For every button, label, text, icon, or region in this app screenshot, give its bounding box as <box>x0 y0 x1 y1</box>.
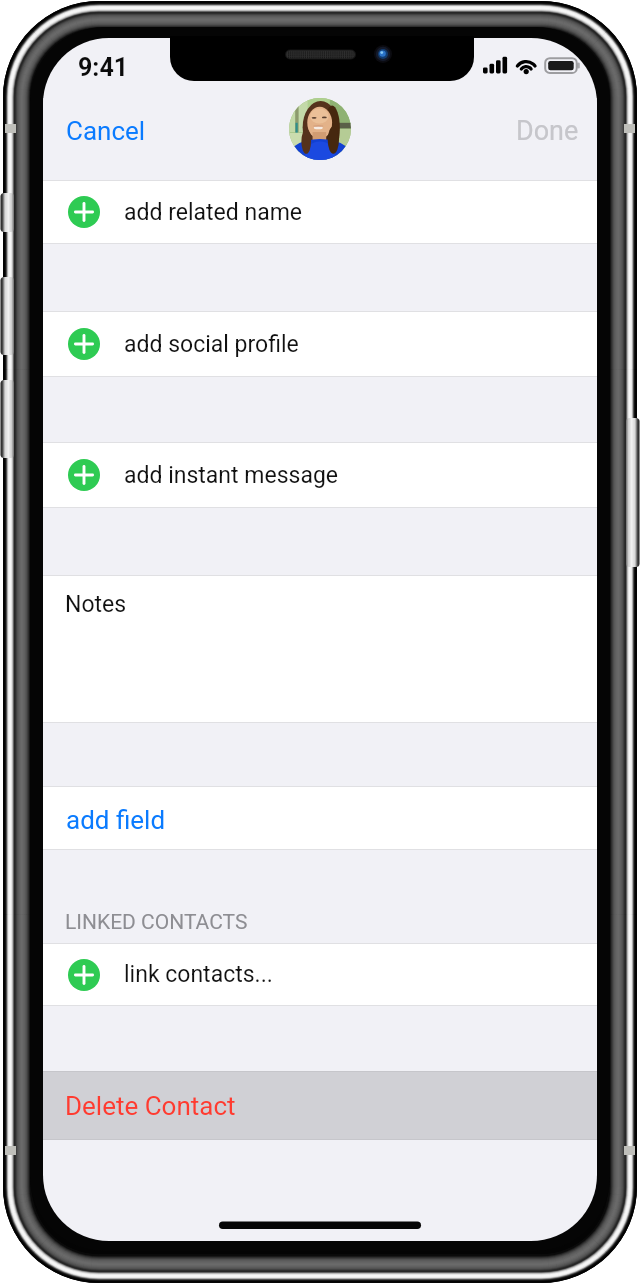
button[interactable]: Done <box>502 106 593 156</box>
button[interactable]: Cancel <box>52 107 160 155</box>
staticText: 9:41 <box>78 53 129 82</box>
button[interactable]: add social profile <box>43 311 597 377</box>
staticText: link contacts... <box>124 961 273 988</box>
staticText: Notes <box>65 591 127 618</box>
button[interactable]: Notes <box>43 575 597 723</box>
staticText: add instant message <box>124 462 339 489</box>
button[interactable]: add instant message <box>43 442 597 508</box>
button[interactable]: Delete Contact <box>43 1071 597 1140</box>
staticText: Done <box>516 115 579 147</box>
staticText: Cancel <box>66 116 146 146</box>
button[interactable]: link contacts... <box>43 943 597 1006</box>
staticText: add social profile <box>124 331 299 358</box>
button[interactable]: add field <box>43 786 597 850</box>
staticText: LINKED CONTACTS <box>65 910 248 935</box>
staticText: add related name <box>124 199 303 226</box>
staticText: add field <box>66 805 166 835</box>
staticText: Delete Contact <box>65 1091 236 1121</box>
button[interactable]: add related name <box>43 180 597 244</box>
button[interactable]: Contact photo <box>289 98 351 160</box>
